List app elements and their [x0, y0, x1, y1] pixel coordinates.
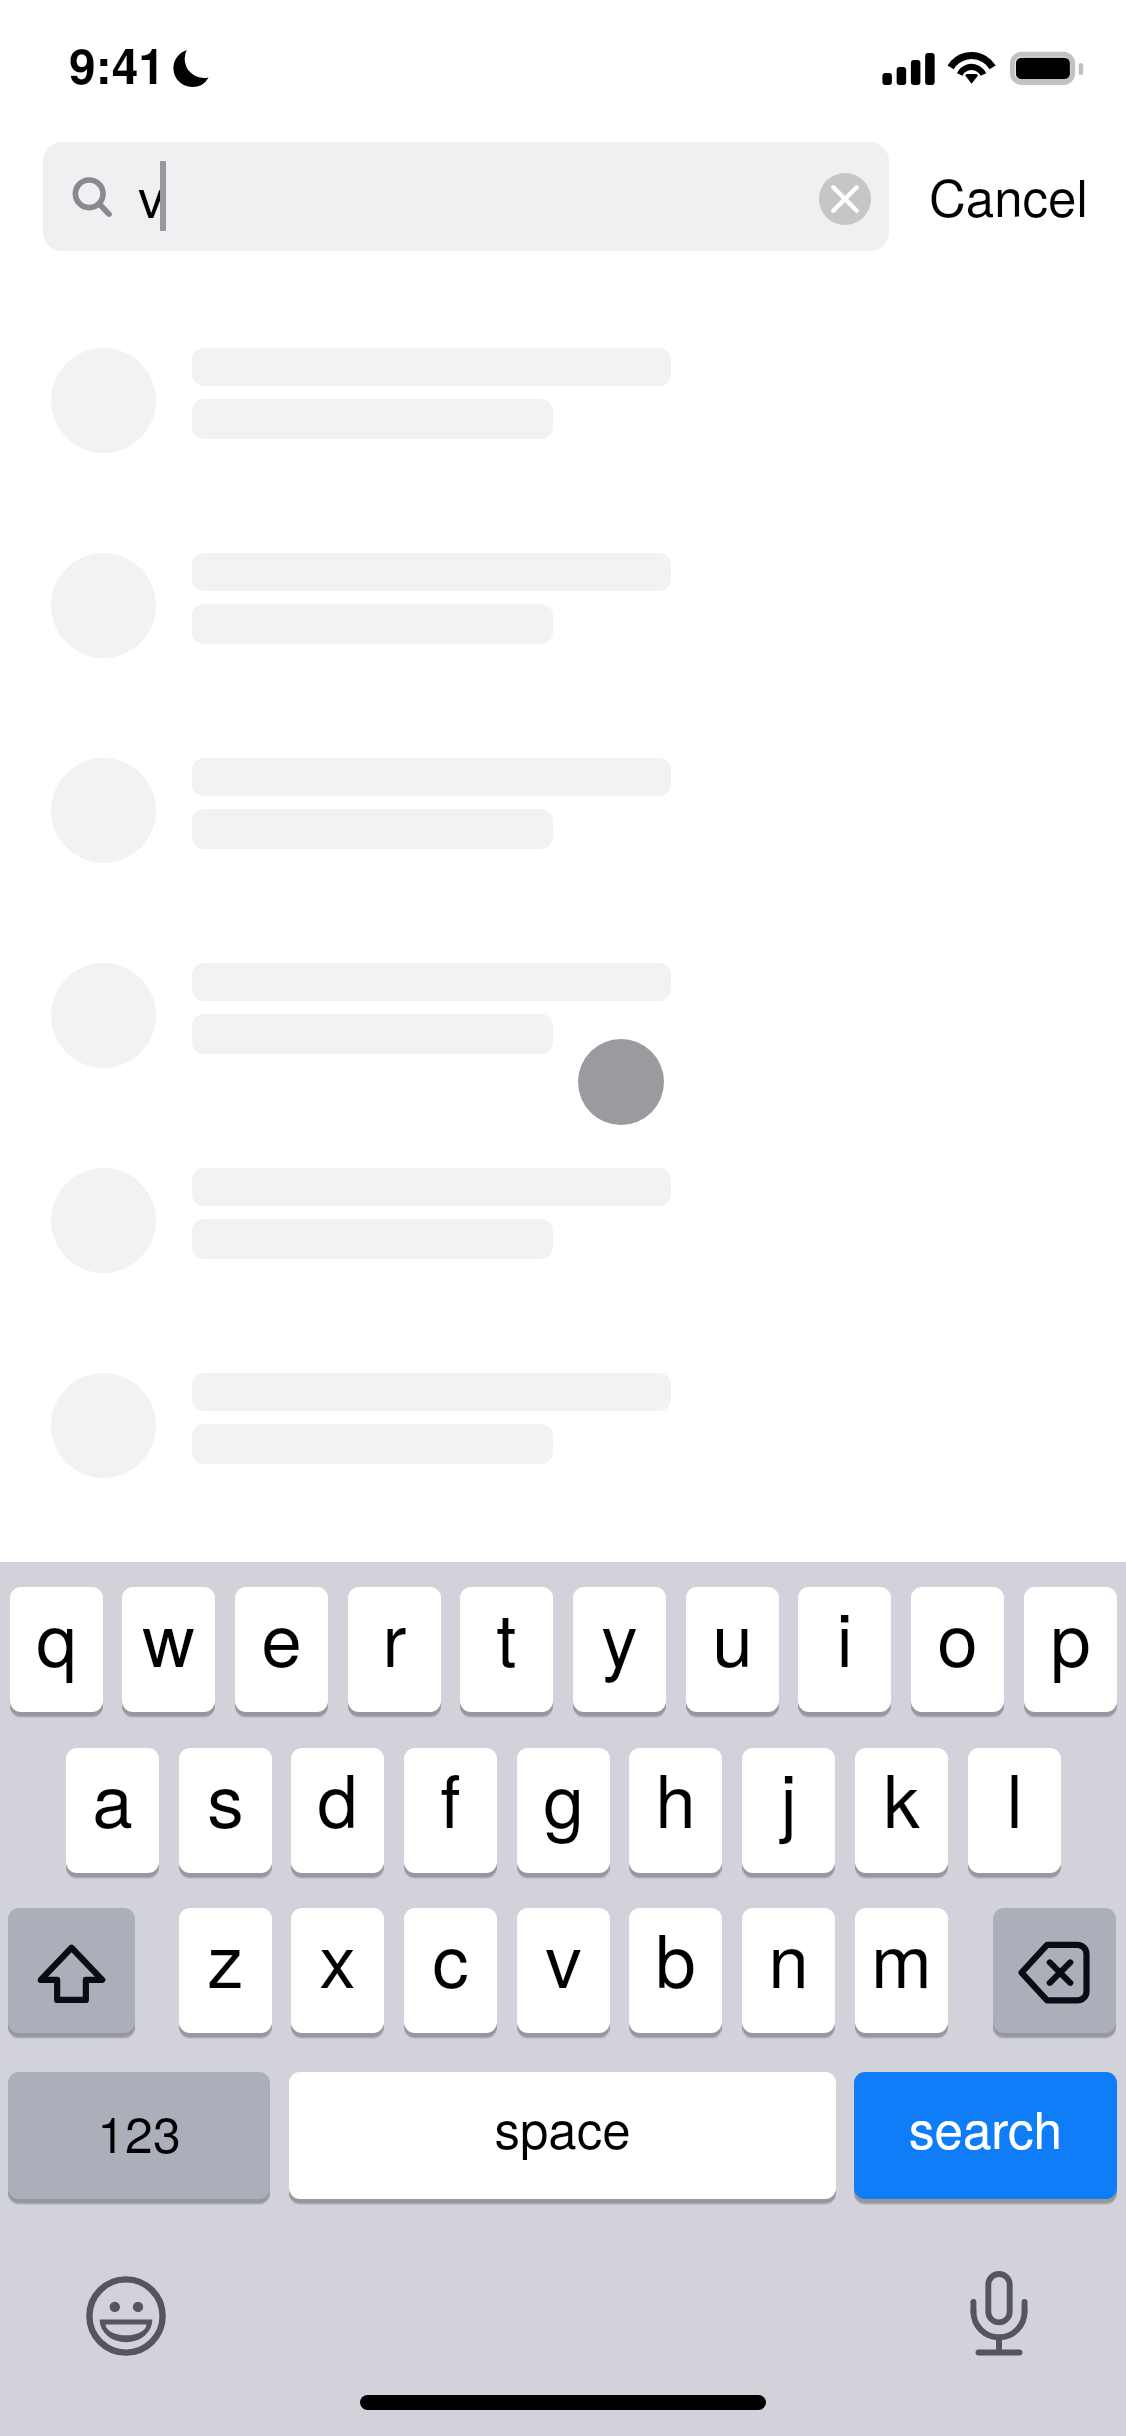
button[interactable]: w	[122, 1587, 215, 1712]
button[interactable]: j	[742, 1748, 835, 1873]
staticText: r	[382, 1587, 407, 1688]
button[interactable]: Cancel	[912, 142, 1102, 251]
staticText: e	[261, 1587, 302, 1688]
staticText: k	[883, 1748, 920, 1849]
staticText: x	[319, 1908, 356, 2009]
button[interactable]: v	[517, 1908, 610, 2033]
staticText: m	[871, 1908, 932, 2009]
staticText: o	[937, 1587, 978, 1688]
staticText: v	[138, 156, 165, 233]
button[interactable]: search	[854, 2072, 1117, 2199]
staticText: h	[655, 1748, 696, 1849]
staticText: f	[440, 1748, 461, 1849]
button[interactable]: l	[968, 1748, 1061, 1873]
button[interactable]: i	[798, 1587, 891, 1712]
staticText: q	[36, 1587, 77, 1688]
staticText: Cancel	[929, 158, 1088, 231]
button[interactable]: q	[10, 1587, 103, 1712]
button[interactable]: v	[43, 142, 889, 251]
staticText: a	[92, 1748, 133, 1849]
staticText: i	[836, 1587, 853, 1688]
button[interactable]: b	[629, 1908, 722, 2033]
button[interactable]: s	[179, 1748, 272, 1873]
button[interactable]: Dictation	[939, 2256, 1059, 2376]
staticText: c	[432, 1908, 469, 2009]
staticText: s	[207, 1748, 244, 1849]
button[interactable]: Search result 4	[0, 935, 1126, 1096]
button[interactable]: Clear text	[819, 173, 871, 225]
staticText: l	[1006, 1748, 1023, 1849]
button[interactable]: f	[404, 1748, 497, 1873]
button[interactable]: Search result 3	[0, 730, 1126, 891]
button[interactable]: Emoji keyboard	[66, 2256, 186, 2376]
button[interactable]: Backspace	[993, 1908, 1116, 2033]
button[interactable]: 123	[8, 2072, 270, 2199]
button[interactable]: a	[66, 1748, 159, 1873]
button[interactable]: u	[686, 1587, 779, 1712]
staticText: 123	[97, 2096, 181, 2168]
staticText: b	[655, 1908, 696, 2009]
button[interactable]: y	[573, 1587, 666, 1712]
staticText: z	[207, 1908, 244, 2009]
button[interactable]: n	[742, 1908, 835, 2033]
staticText: w	[142, 1587, 195, 1688]
button[interactable]: Shift	[8, 1908, 135, 2033]
staticText: search	[909, 2090, 1062, 2163]
staticText: u	[712, 1587, 753, 1688]
button[interactable]: p	[1024, 1587, 1117, 1712]
staticText: space	[494, 2090, 631, 2163]
button[interactable]: k	[855, 1748, 948, 1873]
staticText: g	[543, 1748, 584, 1849]
staticText: d	[317, 1748, 358, 1849]
staticText: v	[545, 1908, 582, 2009]
button[interactable]: t	[460, 1587, 553, 1712]
button[interactable]: h	[629, 1748, 722, 1873]
staticText: 9:41	[69, 30, 166, 99]
button[interactable]: space	[289, 2072, 836, 2199]
staticText: j	[780, 1748, 797, 1849]
button[interactable]: c	[404, 1908, 497, 2033]
button[interactable]: Search result 6	[0, 1345, 1126, 1506]
button[interactable]: e	[235, 1587, 328, 1712]
button[interactable]: o	[911, 1587, 1004, 1712]
button[interactable]: m	[855, 1908, 948, 2033]
button[interactable]: r	[348, 1587, 441, 1712]
button[interactable]: x	[291, 1908, 384, 2033]
staticText: y	[601, 1587, 638, 1688]
button[interactable]: Search result 1	[0, 320, 1126, 481]
button[interactable]: g	[517, 1748, 610, 1873]
button[interactable]: Search result 2	[0, 525, 1126, 686]
button[interactable]: d	[291, 1748, 384, 1873]
staticText: t	[496, 1587, 517, 1688]
button[interactable]: Search result 5	[0, 1140, 1126, 1301]
button[interactable]: z	[179, 1908, 272, 2033]
staticText: p	[1050, 1587, 1091, 1688]
staticText: n	[768, 1908, 809, 2009]
